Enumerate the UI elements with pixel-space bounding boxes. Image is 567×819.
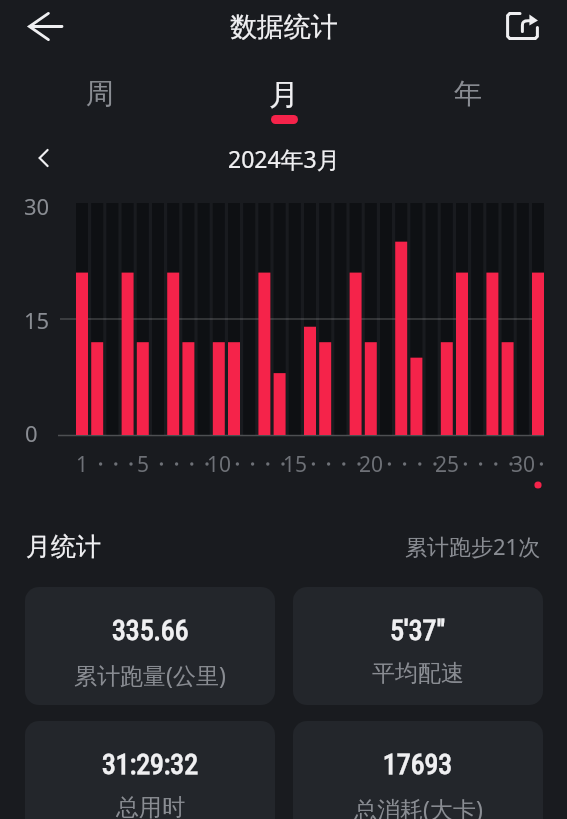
staticText: 31:29:32 xyxy=(102,748,199,781)
staticText: 5 xyxy=(137,450,150,479)
staticText: 20 xyxy=(359,450,384,479)
staticText: 15 xyxy=(24,305,50,335)
staticText: 2024年3月 xyxy=(228,143,340,174)
staticText: 30 xyxy=(511,450,536,479)
staticText: 月 xyxy=(269,76,299,114)
staticText: 335.66 xyxy=(112,614,189,647)
staticText: 0 xyxy=(25,418,38,448)
staticText: 年 xyxy=(454,76,482,111)
staticText: 15 xyxy=(283,450,308,479)
staticText: 10 xyxy=(207,450,232,479)
staticText: 25 xyxy=(435,450,460,479)
staticText: 平均配速 xyxy=(372,659,464,688)
button[interactable]: 17693 xyxy=(293,721,543,819)
staticText: 总用时 xyxy=(116,793,185,819)
staticText: 月统计 xyxy=(26,531,101,562)
staticText: 17693 xyxy=(383,748,453,781)
button[interactable]: Previous month xyxy=(22,136,66,180)
button[interactable]: 月 xyxy=(192,76,376,128)
button[interactable]: 31:29:32 xyxy=(25,721,275,819)
button[interactable]: 335.66 xyxy=(25,587,275,705)
button[interactable]: 周 xyxy=(7,76,192,128)
button[interactable]: 5'37" xyxy=(293,587,543,705)
button[interactable]: Back xyxy=(22,3,66,47)
staticText: 30 xyxy=(24,191,50,221)
staticText: 周 xyxy=(86,76,114,111)
staticText: 累计跑量(公里) xyxy=(74,659,226,690)
staticText: 累计跑步21次 xyxy=(405,531,541,561)
staticText: 数据统计 xyxy=(230,10,338,44)
button[interactable]: Share xyxy=(501,4,545,48)
button[interactable]: 年 xyxy=(376,76,560,128)
staticText: 1 xyxy=(76,450,89,479)
staticText: 总消耗(大卡) xyxy=(354,793,483,819)
staticText: 5'37" xyxy=(390,614,446,647)
